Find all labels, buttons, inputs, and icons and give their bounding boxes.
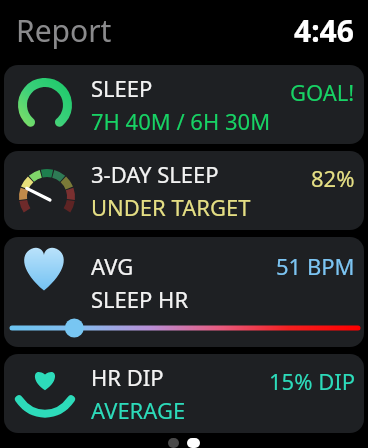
staticText: 4:46 [294,10,354,51]
staticText: 82% [311,163,355,193]
button[interactable]: Three day sleep gauge [4,151,364,230]
staticText: HR DIP [91,362,164,392]
staticText: 15% DIP [269,366,355,396]
other: Sleep goal ring [14,74,76,136]
other: Heart rate [18,245,70,293]
button[interactable]: Sleep goal ring [4,65,364,144]
staticText: 7H 40M / 6H 30M [91,106,271,136]
staticText: UNDER TARGET [91,192,251,222]
other: Three day sleep gauge [15,159,79,223]
staticText: Report [16,10,112,51]
staticText: SLEEP HR [91,284,189,314]
other: Heart rate dip [14,368,76,420]
staticText: AVERAGE [91,395,186,425]
button[interactable]: Heart rate dip [4,354,364,433]
staticText: 3-DAY SLEEP [91,159,219,189]
button[interactable]: Heart rate [4,237,364,347]
staticText: 51 BPM [276,251,355,281]
staticText: GOAL! [290,77,355,107]
staticText: SLEEP [91,73,153,103]
staticText: AVG [91,251,134,281]
